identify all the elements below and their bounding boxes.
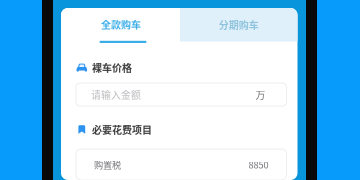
staticText: 8850 — [248, 158, 268, 171]
staticText: 请输入金额 — [91, 87, 141, 102]
button[interactable]: 全款购车 — [61, 8, 180, 41]
staticText: 分期购车 — [219, 17, 259, 32]
staticText: 全款购车 — [101, 17, 141, 31]
button[interactable]: 分期购车 — [180, 8, 297, 41]
staticText: 必要花费项目 — [92, 122, 152, 137]
button[interactable]: 请输入金额 — [76, 83, 286, 106]
staticText: 购置税 — [94, 158, 121, 171]
staticText: 裸车价格 — [92, 60, 132, 75]
staticText: 万 — [255, 87, 265, 102]
